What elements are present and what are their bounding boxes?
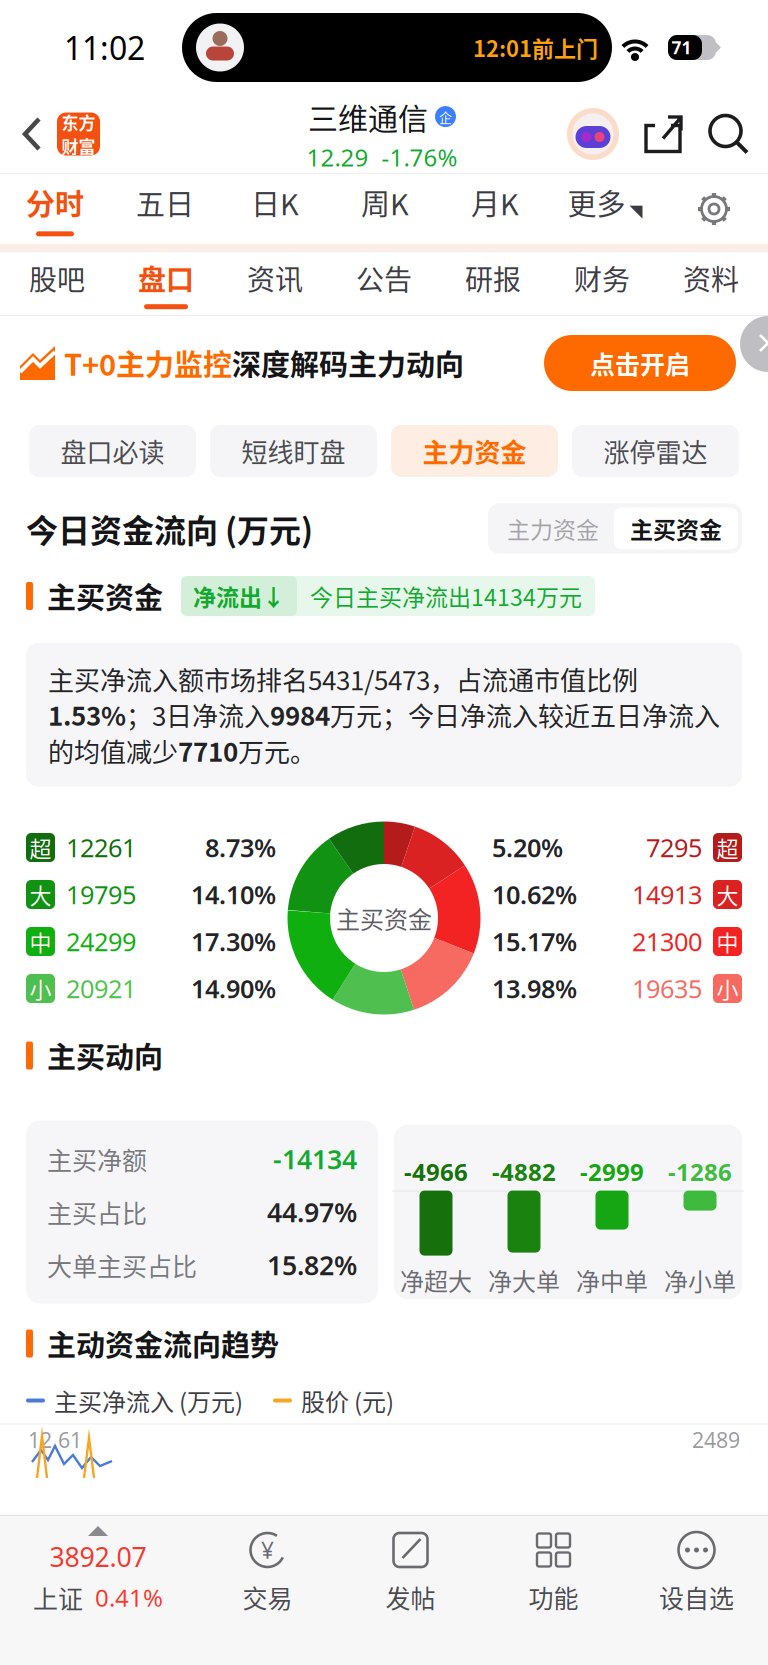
staticText: 上证 [33,1579,83,1616]
staticText: 大 [716,879,738,910]
button[interactable]: Close [738,316,768,372]
staticText: 超 [716,832,738,863]
staticText: 71 [671,36,691,59]
staticText: ¥ [261,1535,274,1565]
button[interactable]: Share [644,113,683,154]
staticText: 主买资金 [47,575,163,617]
button[interactable]: 涨停雷达 [572,425,739,477]
staticText: 周K [361,182,409,224]
staticText: 大 [29,879,51,910]
staticText: 15.17% [492,925,577,958]
button[interactable]: 日K [220,174,330,244]
staticText: 主力资金 [507,512,599,545]
staticText: 五日 [136,182,194,224]
staticText: 14913 [632,878,702,911]
button[interactable]: 发帖 [339,1516,482,1665]
staticText: 小 [29,973,51,1004]
staticText: 财富 [61,133,95,158]
button[interactable]: 更多 [550,174,660,244]
staticText: 15.82% [267,1247,357,1283]
staticText: 主买净额 [47,1141,147,1177]
button[interactable]: 3892.07 [0,1516,196,1665]
staticText: 东方 [61,110,95,134]
staticText: 0.41% [95,1582,163,1613]
staticText: -4966 [404,1156,468,1188]
staticText: 资讯 [247,258,303,298]
staticText: 主买资金 [336,901,432,935]
button[interactable]: 点击开启 [544,335,736,391]
staticText: 21300 [632,925,702,958]
button[interactable]: 功能 [482,1516,625,1665]
staticText: -4882 [492,1156,556,1188]
staticText: 短线盯盘 [241,432,345,470]
button[interactable]: Settings [660,174,768,244]
staticText: 11:02 [64,26,145,69]
staticText: 中 [29,926,51,957]
button[interactable]: 盘口 [111,252,220,315]
staticText: 净流出↓ [193,579,285,613]
staticText: 大单主买占比 [47,1247,197,1283]
staticText: 12.61 [28,1425,82,1454]
staticText: 中 [716,926,738,957]
staticText: 5.20% [492,831,563,864]
staticText: 20921 [66,972,136,1005]
staticText: 交易 [242,1579,292,1615]
button[interactable]: 月K [440,174,550,244]
staticText: 24299 [66,925,136,958]
staticText: 19795 [66,878,136,911]
staticText: 点击开启 [590,345,690,381]
button[interactable]: 主力资金 [391,425,558,477]
button[interactable]: 公告 [329,252,438,315]
staticText: 净大单 [488,1263,560,1297]
staticText: 主买资金 [630,512,722,545]
staticText: 8.73% [205,831,276,864]
staticText: 研报 [465,258,521,298]
staticText: 主力资金 [422,432,526,470]
button[interactable]: 东方 [0,112,100,155]
staticText: 股价 (元) [301,1383,394,1418]
button[interactable]: 分时 [0,174,110,244]
staticText: 月K [471,182,519,224]
staticText: 设自选 [659,1579,734,1615]
button[interactable]: ¥ [196,1516,339,1665]
button[interactable]: 短线盯盘 [210,425,377,477]
button[interactable]: 研报 [438,252,547,315]
button[interactable]: 资料 [656,252,765,315]
staticText: 资料 [683,258,739,298]
staticText: 12261 [66,831,136,864]
staticText: -2999 [580,1156,644,1188]
staticText: 3892.07 [49,1539,146,1574]
button[interactable]: 五日 [110,174,220,244]
staticText: 12.29 [306,141,368,173]
staticText: 小 [716,973,738,1004]
button[interactable]: 设自选 [625,1516,768,1665]
staticText: 财务 [574,258,630,298]
button[interactable]: Search [708,113,749,154]
staticText: 今日资金流向 (万元) [26,505,313,552]
staticText: 三维通信 [308,95,428,138]
staticText: 19635 [632,972,702,1005]
staticText: 主买净流入 (万元) [54,1383,243,1418]
staticText: 发帖 [385,1579,435,1615]
staticText: 44.97% [267,1194,357,1230]
button[interactable]: 周K [330,174,440,244]
staticText: -1286 [668,1156,732,1188]
button[interactable]: 股吧 [2,252,111,315]
staticText: 12:01前上门 [473,32,598,63]
staticText: 功能 [528,1579,578,1615]
button[interactable]: 主买资金 [614,507,738,549]
button[interactable]: 资讯 [220,252,329,315]
staticText: 股吧 [29,258,85,298]
staticText: 10.62% [492,878,577,911]
staticText: 主动资金流向趋势 [47,1322,279,1364]
staticText: 主买动向 [47,1034,163,1076]
button[interactable]: 盘口必读 [29,425,196,477]
staticText: 超 [29,832,51,863]
button[interactable]: 财务 [547,252,656,315]
staticText: 7295 [646,831,702,864]
staticText: -14134 [273,1141,357,1177]
staticText: -1.76% [381,141,457,173]
button[interactable]: 主力资金 [492,507,614,549]
button[interactable]: AI assistant [567,108,619,160]
staticText: 公告 [356,258,412,298]
